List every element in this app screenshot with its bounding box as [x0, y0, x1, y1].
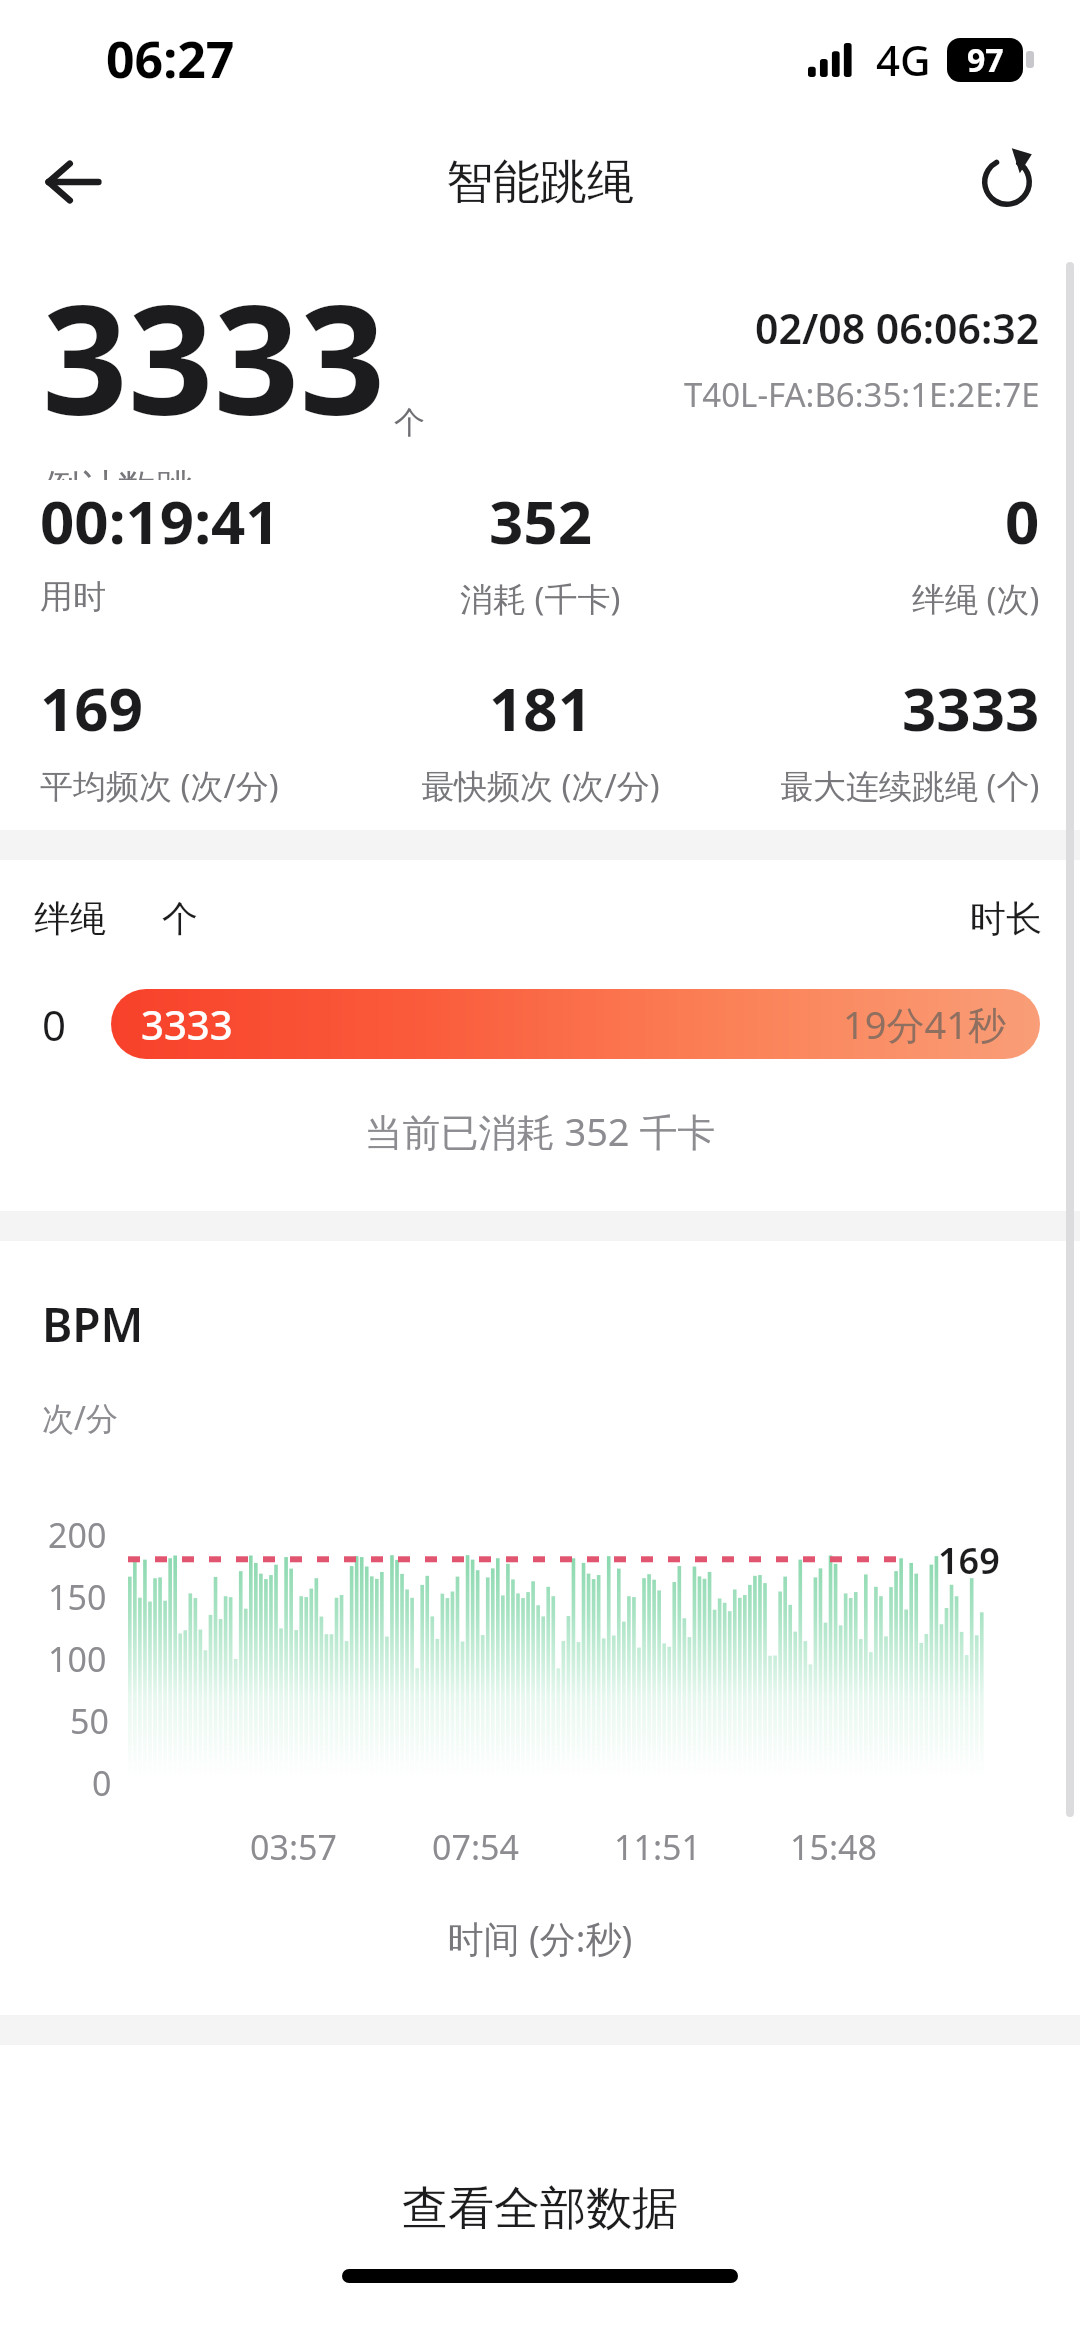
- button[interactable]: Back: [26, 135, 120, 229]
- staticText: 150: [48, 1574, 107, 1620]
- staticText: 查看全部数据: [402, 2180, 678, 2238]
- staticText: 100: [48, 1636, 107, 1682]
- staticText: 个: [394, 403, 425, 442]
- staticText: 绊绳: [34, 896, 106, 941]
- staticText: 07:54: [432, 1824, 519, 1870]
- staticText: 4G: [876, 31, 931, 88]
- button[interactable]: 3333: [111, 989, 1040, 1059]
- staticText: 0: [92, 1760, 112, 1806]
- staticText: 352: [489, 480, 592, 562]
- staticText: 平均频次 (次/分): [40, 763, 279, 808]
- staticText: 绊绳 (次): [912, 576, 1040, 621]
- staticText: 个: [162, 896, 198, 941]
- staticText: 最快频次 (次/分): [421, 763, 660, 808]
- staticText: 智能跳绳: [446, 153, 634, 212]
- staticText: 15:48: [790, 1824, 877, 1870]
- staticText: 02/08 06:06:32: [755, 300, 1040, 356]
- button[interactable]: 查看全部数据: [0, 2149, 1080, 2269]
- staticText: 11:51: [614, 1824, 701, 1870]
- staticText: 06:27: [106, 25, 235, 93]
- staticText: 时长: [970, 896, 1042, 941]
- button[interactable]: Refresh: [960, 135, 1054, 229]
- staticText: 200: [48, 1512, 107, 1558]
- staticText: 0: [1005, 480, 1040, 562]
- staticText: 消耗 (千卡): [460, 576, 621, 621]
- staticText: 3333: [902, 667, 1040, 749]
- staticText: 3333: [42, 254, 386, 458]
- staticText: 00:19:41: [40, 480, 280, 562]
- staticText: 169: [938, 1536, 1000, 1585]
- staticText: T40L-FA:B6:35:1E:2E:7E: [684, 372, 1040, 417]
- staticText: 19分41秒: [843, 998, 1006, 1050]
- staticText: 当前已消耗 352 千卡: [0, 1105, 1080, 1157]
- staticText: 97: [967, 38, 1004, 82]
- staticText: 50: [70, 1698, 109, 1744]
- staticText: 169: [40, 667, 143, 749]
- staticText: 最大连续跳绳 (个): [780, 763, 1040, 808]
- staticText: 次/分: [42, 1396, 118, 1440]
- staticText: BPM: [42, 1293, 144, 1356]
- staticText: 倒计数跳: [42, 464, 194, 480]
- staticText: 0: [42, 996, 67, 1053]
- staticText: 03:57: [250, 1824, 337, 1870]
- staticText: 用时: [40, 576, 106, 618]
- staticText: 181: [489, 667, 592, 749]
- staticText: 3333: [141, 997, 233, 1051]
- staticText: 时间 (分:秒): [0, 1914, 1080, 1963]
